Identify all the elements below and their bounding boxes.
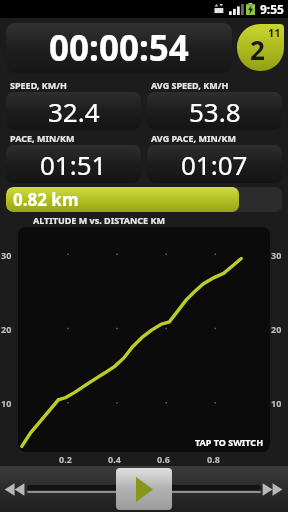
staticText: 0.8 xyxy=(207,453,220,465)
staticText: 0.4 xyxy=(108,453,121,465)
staticText: TAP TO SWITCH xyxy=(195,436,264,448)
button[interactable]: 32.4 xyxy=(6,92,141,130)
staticText: ALTITUDE M vs. DISTANCE KM xyxy=(33,214,165,226)
staticText: AVG SPEED, KM/H xyxy=(151,79,229,91)
button[interactable]: Tap to switch chart xyxy=(18,227,270,452)
staticText: 2 xyxy=(250,32,265,67)
staticText: 01:51 xyxy=(40,147,107,182)
button[interactable]: Lap counter xyxy=(237,24,284,71)
staticText: 32.4 xyxy=(48,94,100,129)
staticText: 10 xyxy=(1,397,12,409)
staticText: 00:00:54 xyxy=(49,24,189,72)
staticText: 20 xyxy=(271,323,282,335)
button[interactable]: Fast forward xyxy=(258,469,288,509)
staticText: 9:55 xyxy=(260,1,284,17)
staticText: 20 xyxy=(1,323,12,335)
staticText: AVG PACE, MIN/KM xyxy=(151,132,236,144)
staticText: 01:07 xyxy=(181,147,248,182)
staticText: 11 xyxy=(268,25,281,40)
staticText: 53.8 xyxy=(189,94,241,129)
staticText: 0.82 km xyxy=(13,188,79,211)
staticText: 30 xyxy=(1,249,12,261)
button[interactable]: 0.82 km xyxy=(6,187,282,212)
button[interactable]: Rewind xyxy=(0,469,30,509)
staticText: 30 xyxy=(271,249,282,261)
button[interactable]: 01:07 xyxy=(147,145,282,183)
staticText: 0.2 xyxy=(59,453,72,465)
button[interactable]: 01:51 xyxy=(6,145,141,183)
staticText: 10 xyxy=(271,397,282,409)
button[interactable]: 53.8 xyxy=(147,92,282,130)
staticText: 0.6 xyxy=(157,453,170,465)
staticText: SPEED, KM/H xyxy=(10,79,67,91)
staticText: PACE, MIN/KM xyxy=(10,132,75,144)
button[interactable]: 00:00:54 xyxy=(6,23,232,73)
button[interactable]: Play xyxy=(116,468,172,510)
